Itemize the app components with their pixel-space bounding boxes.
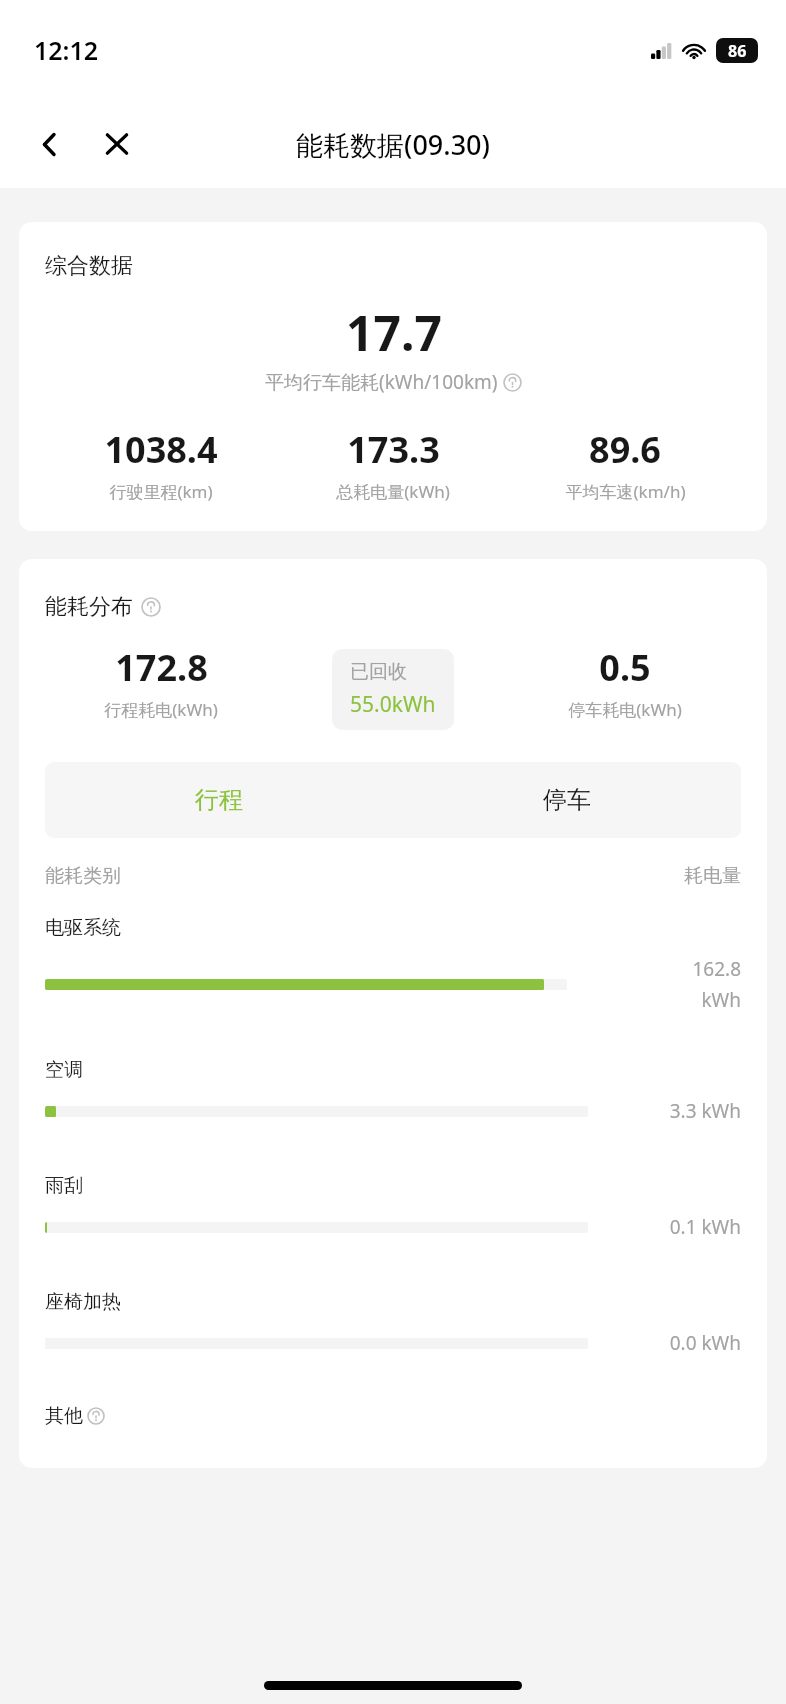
staticText: 能耗分布 [45, 593, 133, 621]
staticText: 耗电量 [684, 864, 741, 888]
staticText: 雨刮 [45, 1174, 83, 1198]
button[interactable]: 座椅加热 [45, 1290, 741, 1356]
button[interactable]: 空调 [45, 1058, 741, 1124]
staticText: 1038.4 [104, 425, 218, 474]
staticText: 总耗电量(kWh) [336, 480, 450, 503]
staticText: 行程耗电(kWh) [104, 698, 218, 721]
staticText: 12:12 [34, 33, 99, 67]
staticText: 停车耗电(kWh) [568, 698, 682, 721]
staticText: 172.8 [115, 643, 208, 692]
button[interactable]: 其他 [45, 1404, 105, 1428]
staticText: 17.7 [346, 300, 442, 365]
button[interactable]: Close [92, 119, 142, 169]
staticText: 电驱系统 [45, 916, 121, 940]
staticText: 86 [728, 40, 747, 62]
staticText: 162.8 kWh [692, 956, 741, 1012]
staticText: 55.0kWh [350, 690, 436, 719]
staticText: 能耗数据(09.30) [296, 126, 490, 163]
staticText: 0.0 kWh [669, 1330, 741, 1356]
staticText: 空调 [45, 1058, 83, 1082]
button[interactable]: 行程 [45, 762, 393, 838]
staticText: 0.1 kWh [669, 1214, 741, 1240]
button[interactable]: 能耗分布 [45, 593, 161, 621]
staticText: 平均车速(km/h) [565, 480, 686, 503]
staticText: 综合数据 [45, 252, 133, 280]
staticText: 3.3 kWh [669, 1098, 741, 1124]
staticText: 行程 [195, 785, 243, 815]
staticText: 座椅加热 [45, 1290, 121, 1314]
staticText: 89.6 [589, 425, 661, 474]
staticText: 平均行车能耗(kWh/100km) [265, 369, 498, 395]
staticText: 停车 [543, 785, 591, 815]
button[interactable]: Back [24, 119, 74, 169]
button[interactable]: 平均行车能耗(kWh/100km) [265, 369, 522, 395]
staticText: 其他 [45, 1404, 83, 1428]
staticText: 行驶里程(km) [109, 480, 213, 503]
button[interactable]: 停车 [393, 762, 741, 838]
staticText: 已回收 [350, 660, 407, 684]
staticText: 173.3 [347, 425, 440, 474]
button[interactable]: 雨刮 [45, 1174, 741, 1240]
button[interactable]: 电驱系统 [45, 916, 741, 1012]
staticText: 能耗类别 [45, 864, 121, 888]
staticText: 0.5 [599, 643, 651, 692]
